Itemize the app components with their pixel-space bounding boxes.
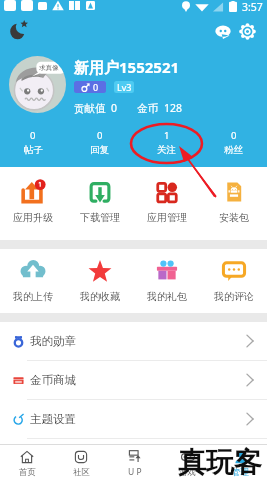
staticText: 0 xyxy=(231,129,237,142)
button[interactable]: Settings xyxy=(238,22,257,41)
staticText: 我的上传 xyxy=(13,290,53,303)
staticText: 首页 xyxy=(19,467,36,478)
staticText: 粉丝 xyxy=(224,144,243,156)
staticText: 主题设置 xyxy=(30,412,76,426)
button[interactable]: 我的收藏 xyxy=(66,259,133,303)
staticText: 1 xyxy=(164,129,170,142)
staticText: 0 xyxy=(97,129,103,142)
staticText: 管理 xyxy=(232,467,249,478)
button[interactable]: Night mode xyxy=(9,20,29,40)
button[interactable]: 我的礼包 xyxy=(133,259,200,303)
staticText: 求真像 xyxy=(39,64,59,72)
button[interactable]: 下载管理 xyxy=(66,180,133,224)
button[interactable]: 游戏 xyxy=(161,445,214,480)
button[interactable]: 社区 xyxy=(54,445,108,480)
staticText: 我的礼包 xyxy=(147,290,187,303)
staticText: 我的评论 xyxy=(214,290,254,303)
staticText: 我的收藏 xyxy=(80,290,120,303)
button[interactable]: Messages xyxy=(215,24,233,40)
button[interactable]: 0 xyxy=(0,129,66,156)
staticText: 金币 xyxy=(137,102,158,115)
button[interactable]: 管理 xyxy=(214,445,267,480)
button[interactable]: 主题设置 xyxy=(0,400,267,439)
button[interactable]: U P xyxy=(108,445,161,480)
staticText: 帖子 xyxy=(24,144,43,156)
button[interactable]: 1 xyxy=(133,129,200,156)
button[interactable]: 我的评论 xyxy=(200,259,267,303)
staticText: 下载管理 xyxy=(80,211,120,224)
staticText: 真玩客 xyxy=(178,445,262,480)
button[interactable]: 我的勋章 xyxy=(0,322,267,361)
staticText: 0 xyxy=(93,81,99,93)
staticText: 我的勋章 xyxy=(30,334,76,348)
button[interactable]: 0 xyxy=(66,129,133,156)
button[interactable]: Avatar xyxy=(9,56,66,113)
button[interactable]: 应用管理 xyxy=(133,180,200,224)
staticText: 回复 xyxy=(90,144,109,156)
staticText: 安装包 xyxy=(219,211,249,224)
staticText: 关注 xyxy=(157,144,176,156)
staticText: 金币商城 xyxy=(30,373,76,387)
staticText: 应用升级 xyxy=(13,211,53,224)
button[interactable]: 首页 xyxy=(0,445,54,480)
button[interactable]: 金币商城 xyxy=(0,361,267,400)
staticText: 128 xyxy=(164,101,183,115)
button[interactable]: 我的上传 xyxy=(0,259,66,303)
staticText: 0 xyxy=(111,101,118,115)
button[interactable]: 安装包 xyxy=(200,180,267,224)
button[interactable]: 应用升级 xyxy=(0,180,66,224)
staticText: 社区 xyxy=(73,467,90,478)
staticText: 游戏 xyxy=(179,467,196,478)
staticText: 贡献值 xyxy=(74,102,106,115)
staticText: 0 xyxy=(30,129,36,142)
staticText: U P xyxy=(128,466,142,478)
staticText: 3:57 xyxy=(242,0,263,14)
button[interactable]: 0 xyxy=(200,129,267,156)
staticText: 新用户1552521 xyxy=(74,57,180,77)
staticText: Lv3 xyxy=(117,81,132,93)
staticText: 应用管理 xyxy=(147,211,187,224)
